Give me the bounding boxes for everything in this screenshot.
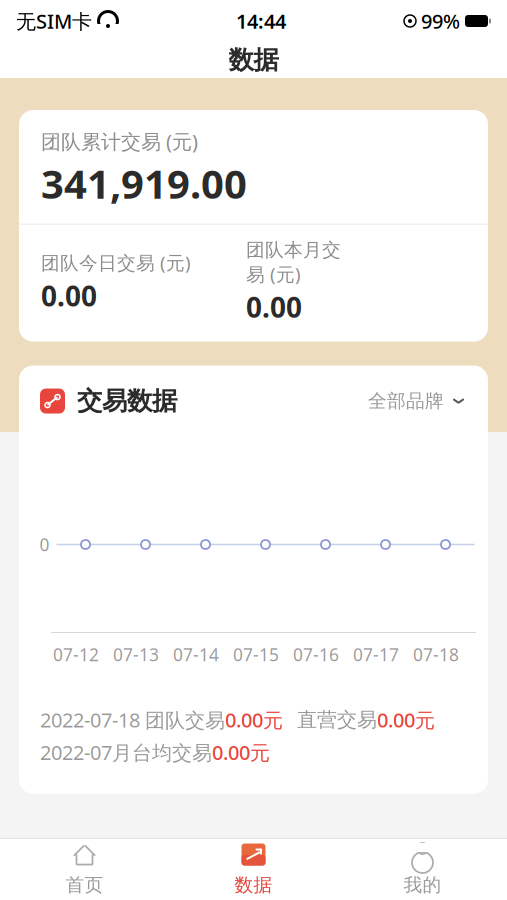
staticText: 团队本月交易 (元) <box>246 239 341 286</box>
staticText: 2022-07-18 团队交易 <box>40 706 225 733</box>
button[interactable]: 全部品牌 <box>366 384 467 418</box>
staticText: 0.00 <box>246 288 302 326</box>
staticText: 0.00 <box>41 277 97 314</box>
staticText: 07-12 <box>53 643 99 666</box>
button[interactable]: 数据 <box>169 839 338 900</box>
button[interactable]: 首页 <box>0 839 169 900</box>
staticText: 数据 <box>234 873 272 896</box>
staticText: 交易数据 <box>77 385 177 417</box>
staticText: 99% <box>421 8 460 34</box>
staticText: 团队今日交易 (元) <box>41 250 191 275</box>
staticText: 14:44 <box>236 8 286 34</box>
staticText: 全部品牌 <box>368 390 444 412</box>
staticText: 数据 <box>228 44 278 75</box>
staticText: 2022-07月台均交易 <box>40 739 212 766</box>
staticText: 07-16 <box>293 643 339 666</box>
staticText: 无SIM卡 <box>16 8 92 34</box>
staticText: 07-17 <box>353 643 399 666</box>
staticText: 07-15 <box>233 643 279 666</box>
button[interactable]: 我的 <box>338 839 507 900</box>
staticText: 团队累计交易 (元) <box>41 128 198 155</box>
staticText: 0.00元 <box>212 739 270 766</box>
staticText: 07-13 <box>113 643 159 666</box>
staticText: 0.00元 <box>225 706 283 733</box>
staticText: 我的 <box>403 873 441 896</box>
staticText: 0.00元 <box>377 706 435 733</box>
staticText: 07-18 <box>413 643 459 666</box>
staticText: 07-14 <box>173 643 219 666</box>
staticText: 首页 <box>65 873 103 896</box>
staticText: 0 <box>39 533 49 556</box>
staticText: 341,919.00 <box>41 157 247 210</box>
staticText: 直营交易 <box>297 707 377 732</box>
